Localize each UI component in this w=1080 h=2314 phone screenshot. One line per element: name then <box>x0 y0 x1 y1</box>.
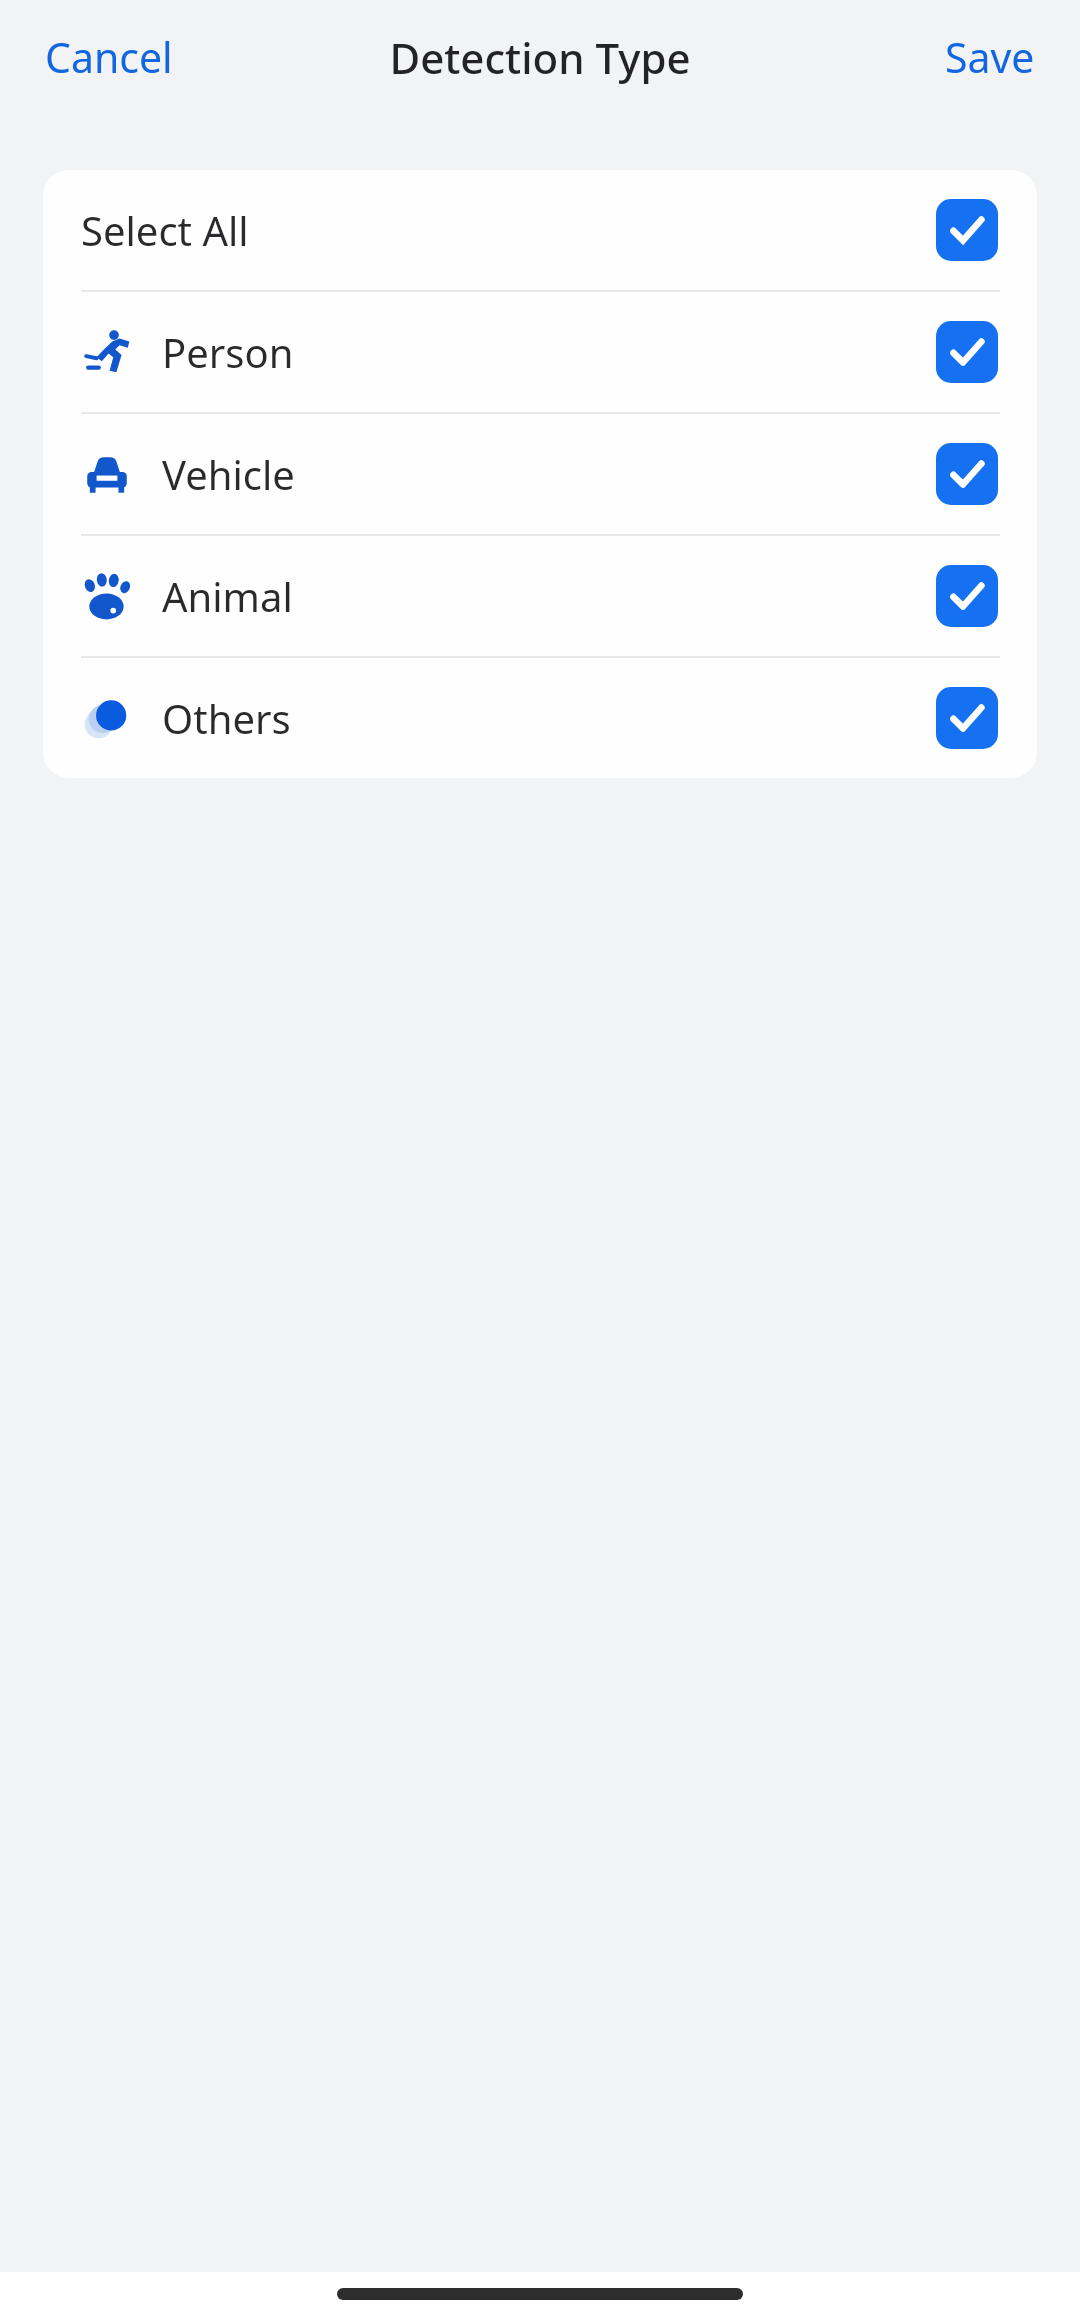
staticText: Person <box>162 325 294 379</box>
button[interactable]: Others <box>43 658 1037 778</box>
button[interactable]: Cancel <box>22 17 196 97</box>
button[interactable]: Person <box>43 292 1037 412</box>
button[interactable]: Checked <box>936 443 998 505</box>
button[interactable]: Animal <box>43 536 1037 656</box>
staticText: Save <box>945 29 1035 85</box>
button[interactable]: Save <box>922 17 1058 97</box>
staticText: Select All <box>81 203 249 257</box>
button[interactable]: Checked <box>936 687 998 749</box>
staticText: Others <box>162 691 291 745</box>
button[interactable]: Vehicle <box>43 414 1037 534</box>
staticText: Vehicle <box>162 447 295 501</box>
staticText: Animal <box>162 569 293 623</box>
staticText: Detection Type <box>389 29 691 86</box>
staticText: Cancel <box>45 29 173 85</box>
button[interactable]: Select All <box>43 170 1037 290</box>
button[interactable]: Checked <box>936 321 998 383</box>
button[interactable]: Checked <box>936 199 998 261</box>
button[interactable]: Checked <box>936 565 998 627</box>
